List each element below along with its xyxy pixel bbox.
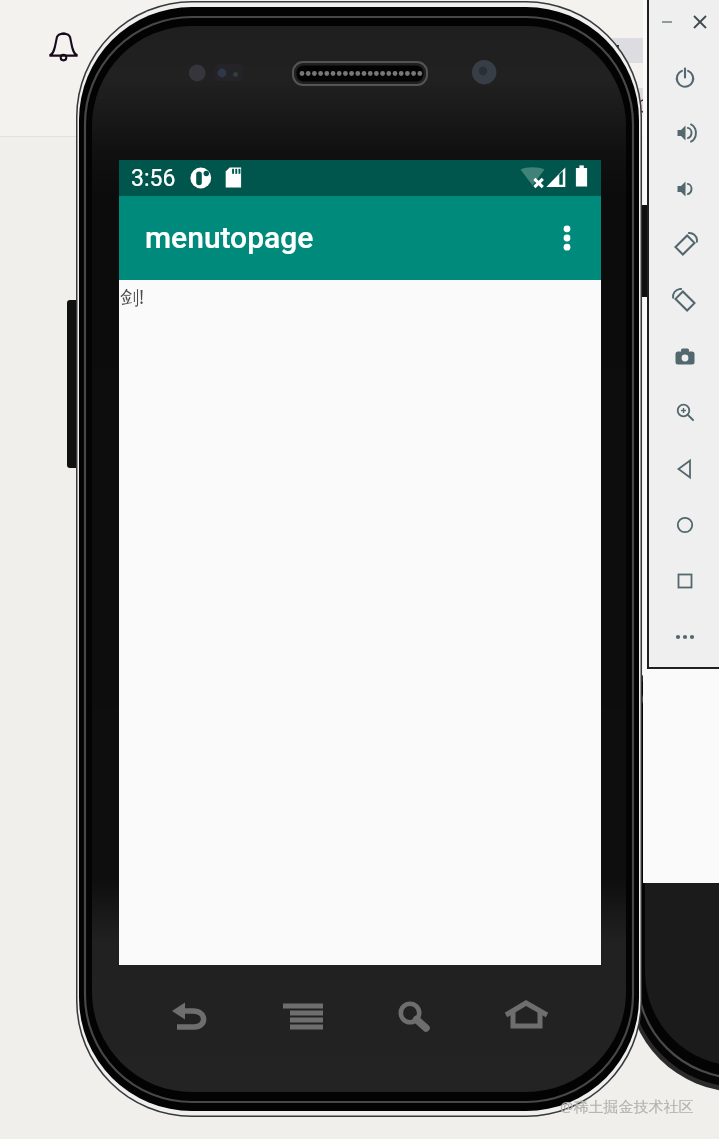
button[interactable]: Screenshot — [668, 340, 702, 374]
staticText: @稀土掘金技术社区 — [560, 1096, 694, 1116]
button[interactable]: Zoom — [668, 396, 702, 430]
button[interactable]: Back — [119, 982, 239, 1052]
staticText: 剑! — [120, 284, 145, 310]
button[interactable]: Close — [688, 10, 712, 34]
button[interactable]: Power — [668, 60, 702, 94]
button[interactable]: Rotate right — [668, 284, 702, 318]
button[interactable]: Minimize — [655, 10, 679, 34]
staticText: p — [636, 86, 652, 120]
button[interactable]: More — [668, 620, 702, 654]
button[interactable]: More options — [543, 214, 591, 262]
staticText: 3:56 — [131, 165, 176, 192]
button[interactable]: Back — [668, 452, 702, 486]
button[interactable]: Search — [359, 982, 480, 1052]
button[interactable]: Home — [668, 508, 702, 542]
button[interactable]: Volume down — [668, 172, 702, 206]
button[interactable]: Notifications — [46, 29, 81, 64]
button[interactable]: Volume up — [668, 116, 702, 150]
button[interactable]: Recent apps — [239, 982, 359, 1052]
button[interactable]: Home — [480, 982, 601, 1052]
staticText: " : f — [608, 36, 684, 70]
staticText: menutopage — [145, 220, 314, 255]
button[interactable]: Rotate left — [668, 228, 702, 262]
button[interactable]: Overview — [668, 564, 702, 598]
